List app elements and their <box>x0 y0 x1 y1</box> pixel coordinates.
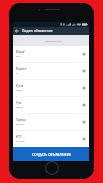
button[interactable]: СОЗДАТЬ ОБЪЯВЛЕНИЕ <box>13 147 89 161</box>
button[interactable]: Back <box>13 27 20 35</box>
staticText: Автомат <box>16 140 25 143</box>
staticText: Седан <box>16 89 23 92</box>
staticText: СОЗДАТЬ ОБЪЯВЛЕНИЕ <box>32 152 71 157</box>
button[interactable]: Марка* <box>13 46 89 63</box>
staticText: Задний <box>16 123 24 126</box>
button[interactable]: Back <box>13 27 89 35</box>
staticText: Руль <box>16 101 22 105</box>
staticText: BMW <box>16 55 22 58</box>
button[interactable]: КПП <box>13 131 89 148</box>
staticText: Левый <box>16 106 23 109</box>
staticText: Подать объявление <box>22 29 53 33</box>
button[interactable]: Модель* <box>13 63 89 80</box>
staticText: Модель* <box>16 67 28 71</box>
button[interactable]: Руль <box>13 97 89 114</box>
button[interactable]: Кузов <box>13 80 89 97</box>
button[interactable]: Объявление <box>13 148 89 161</box>
staticText: X5 <box>16 72 19 75</box>
staticText: КПП <box>16 135 22 139</box>
button[interactable]: Привод <box>13 114 89 131</box>
staticText: Кузов <box>16 84 24 88</box>
staticText: Привод <box>16 118 26 122</box>
staticText: АВТОМОБИЛЬ <box>45 39 62 42</box>
staticText: Марка* <box>16 50 26 54</box>
